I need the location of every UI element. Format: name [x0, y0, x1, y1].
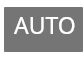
button[interactable]: AUTO	[4, 7, 83, 52]
staticText: AUTO	[14, 9, 76, 40]
